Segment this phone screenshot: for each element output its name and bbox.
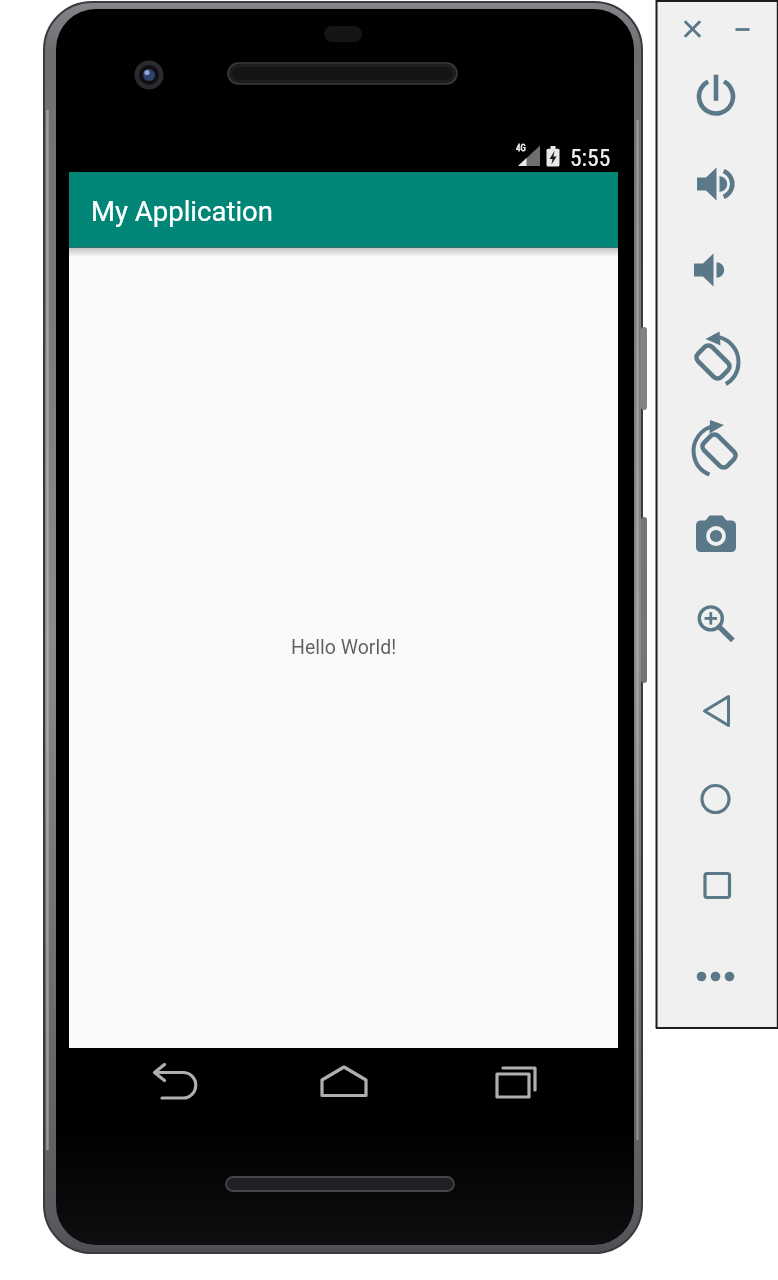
button[interactable]	[690, 158, 742, 210]
staticText: 4G	[516, 143, 526, 154]
button[interactable]	[678, 15, 707, 44]
button[interactable]	[316, 1058, 372, 1110]
staticText: My Application	[91, 195, 273, 227]
button[interactable]	[690, 597, 742, 649]
button[interactable]	[690, 859, 742, 911]
staticText: Hello World!	[291, 636, 397, 659]
button[interactable]	[690, 510, 742, 562]
button[interactable]	[690, 685, 742, 737]
button[interactable]	[728, 15, 757, 44]
button[interactable]	[690, 335, 742, 387]
button[interactable]	[150, 1058, 205, 1110]
button[interactable]	[690, 244, 742, 296]
button[interactable]	[690, 424, 742, 476]
button[interactable]	[690, 70, 742, 122]
button[interactable]	[690, 950, 742, 1002]
button[interactable]	[487, 1058, 543, 1110]
button[interactable]: My Application	[69, 172, 618, 247]
staticText: 5:55	[570, 144, 611, 172]
button[interactable]	[690, 773, 742, 825]
